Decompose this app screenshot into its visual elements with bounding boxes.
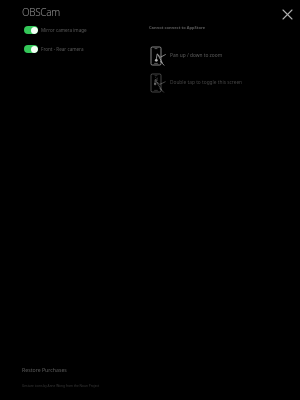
button[interactable]: Close [278,5,296,23]
button[interactable]: Pan up / down to zoom [151,46,223,67]
staticText: Cannot connect to AppStore [149,25,206,30]
button[interactable]: Restore Purchases [20,364,69,375]
staticText: OBSCam [22,5,60,19]
button[interactable]: Mirror camera image [24,24,87,36]
staticText: Pan up / down to zoom [170,52,223,59]
staticText: Restore Purchases [22,366,67,373]
staticText: Front - Rear camera [41,46,84,52]
staticText: Double tap to toggle this screen [170,79,243,86]
staticText: Mirror camera image [41,27,87,33]
button[interactable]: Front - Rear camera [24,43,84,55]
staticText: Gesture icons by Anne Wong from the Noun… [22,384,100,388]
button[interactable]: Double tap to toggle this screen [151,73,243,94]
